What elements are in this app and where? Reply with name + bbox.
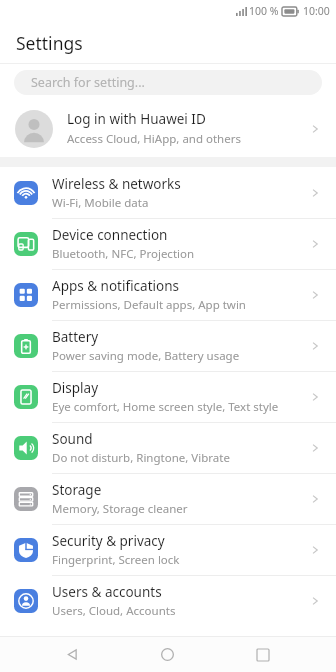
button[interactable]: Back — [49, 637, 95, 672]
staticText: Apps & notifications — [52, 277, 179, 295]
button[interactable]: Search for setting... — [14, 70, 322, 95]
staticText: Log in with Huawei ID — [67, 110, 206, 128]
button[interactable]: Users & accounts — [0, 575, 336, 626]
staticText: Settings — [16, 31, 83, 55]
button[interactable]: Log in with Huawei ID — [0, 100, 336, 157]
staticText: Fingerprint, Screen lock — [52, 552, 180, 568]
staticText: Eye comfort, Home screen style, Text sty… — [52, 399, 279, 415]
staticText: Permissions, Default apps, App twin — [52, 297, 246, 313]
button[interactable]: Wireless & networks — [0, 167, 336, 218]
staticText: Security & privacy — [52, 532, 165, 550]
staticText: Bluetooth, NFC, Projection — [52, 246, 195, 262]
button[interactable]: Recents — [240, 637, 286, 672]
button[interactable]: Device connection — [0, 218, 336, 269]
button[interactable]: Security & privacy — [0, 524, 336, 575]
staticText: Users & accounts — [52, 583, 162, 601]
staticText: Search for setting... — [31, 74, 145, 91]
button[interactable]: Apps & notifications — [0, 269, 336, 320]
button[interactable]: Display — [0, 371, 336, 422]
button[interactable]: Sound — [0, 422, 336, 473]
button[interactable]: Storage — [0, 473, 336, 524]
staticText: Access Cloud, HiApp, and others — [67, 131, 241, 147]
staticText: Do not disturb, Ringtone, Vibrate — [52, 450, 230, 466]
staticText: Memory, Storage cleaner — [52, 501, 188, 517]
staticText: 10:00 — [303, 4, 330, 18]
staticText: 100 % — [249, 4, 279, 18]
staticText: Power saving mode, Battery usage — [52, 348, 240, 364]
staticText: Wi-Fi, Mobile data — [52, 195, 149, 211]
staticText: Wireless & networks — [52, 175, 181, 193]
button[interactable]: Battery — [0, 320, 336, 371]
staticText: Sound — [52, 430, 93, 448]
staticText: Storage — [52, 481, 102, 499]
button[interactable]: Home — [144, 637, 190, 672]
staticText: Display — [52, 379, 99, 397]
staticText: Device connection — [52, 226, 168, 244]
staticText: Users, Cloud, Accounts — [52, 603, 176, 619]
staticText: Battery — [52, 328, 99, 346]
